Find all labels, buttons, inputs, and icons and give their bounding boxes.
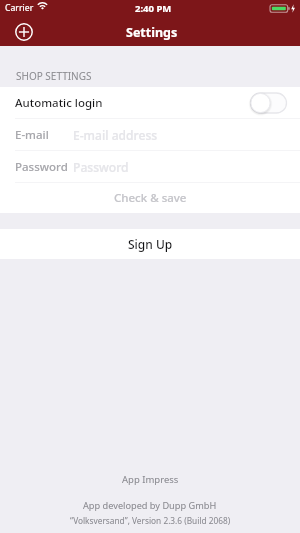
staticText: SHOP SETTINGS [16,69,92,83]
staticText: 2:40 PM [135,2,172,15]
button[interactable]: Automatic login [0,87,300,118]
button[interactable]: Sign Up [0,229,300,259]
staticText: E-mail [15,127,49,143]
staticText: Password [15,159,68,175]
button[interactable]: App Impress [110,469,191,490]
staticText: Sign Up [128,236,173,252]
button[interactable]: Check & save [0,183,300,213]
button[interactable]: E-mail [0,119,300,150]
button[interactable]: Automatic login toggle, off [250,91,287,115]
staticText: E-mail address [73,127,158,143]
staticText: App developed by Dupp GmbH [83,499,217,512]
staticText: “Volksversand”, Version 2.3.6 (Build 206… [70,515,231,526]
button[interactable]: Password [0,151,300,182]
staticText: Carrier [5,2,34,14]
staticText: Automatic login [15,95,103,111]
button[interactable]: Add [13,21,35,43]
staticText: Check & save [114,190,187,206]
staticText: Password [73,159,129,175]
staticText: App Impress [122,473,179,486]
staticText: Settings [126,24,178,41]
